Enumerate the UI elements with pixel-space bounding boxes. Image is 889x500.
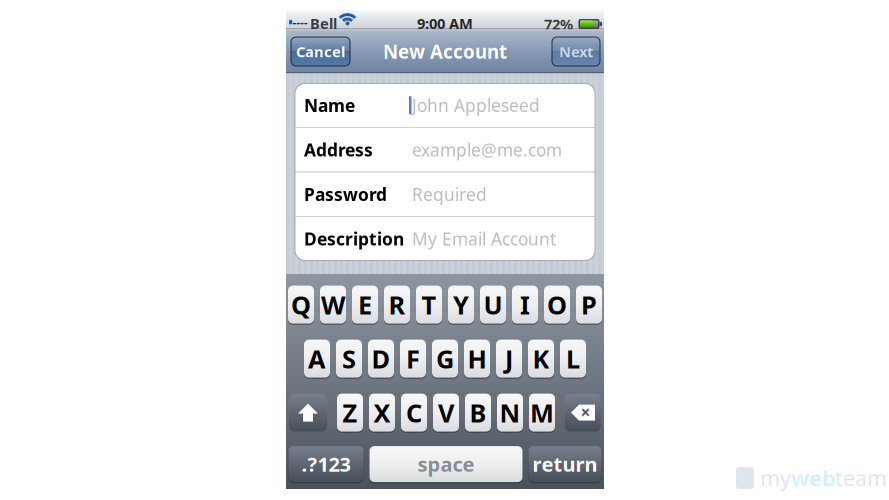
button[interactable]: Z — [337, 394, 363, 432]
staticText: Next — [559, 42, 593, 61]
staticText: my — [760, 464, 791, 492]
staticText: Password — [304, 183, 387, 206]
button[interactable]: J — [496, 340, 522, 378]
button[interactable]: L — [560, 340, 586, 378]
button[interactable]: I — [512, 286, 538, 324]
staticText: H — [467, 342, 486, 375]
staticText: B — [469, 396, 486, 429]
staticText: K — [532, 342, 549, 375]
button[interactable]: space — [369, 446, 522, 482]
staticText: team — [835, 464, 887, 492]
button[interactable]: H — [464, 340, 490, 378]
staticText: × — [580, 401, 590, 424]
button[interactable]: E — [352, 286, 378, 324]
button[interactable]: return — [528, 446, 601, 482]
staticText: Required — [412, 183, 487, 206]
staticText: Q — [291, 288, 311, 321]
staticText: Z — [342, 396, 357, 429]
button[interactable]: G — [432, 340, 458, 378]
staticText: Description — [304, 227, 404, 250]
staticText: Cancel — [296, 42, 345, 61]
staticText: W — [321, 288, 345, 321]
button[interactable]: Name — [295, 83, 595, 127]
button[interactable]: .?123 — [288, 446, 363, 482]
staticText: <> — [736, 467, 754, 489]
button[interactable]: C — [401, 394, 427, 432]
button[interactable]: S — [336, 340, 362, 378]
staticText: example@me.com — [412, 138, 562, 161]
staticText: U — [483, 288, 502, 321]
button[interactable]: X — [369, 394, 395, 432]
button[interactable]: Delete — [565, 394, 601, 432]
staticText: R — [388, 288, 405, 321]
staticText: .?123 — [301, 451, 350, 477]
staticText: T — [421, 288, 436, 321]
staticText: D — [371, 342, 390, 375]
staticText: Bell — [310, 13, 337, 33]
staticText: L — [566, 342, 580, 375]
staticText: space — [417, 451, 474, 477]
button[interactable]: K — [528, 340, 554, 378]
staticText: S — [342, 342, 356, 375]
staticText: My Email Account — [412, 227, 556, 250]
staticText: N — [499, 396, 520, 429]
staticText: New Account — [383, 39, 507, 64]
button[interactable]: D — [368, 340, 394, 378]
button[interactable]: Q — [288, 286, 314, 324]
staticText: A — [308, 342, 326, 375]
staticText: I — [520, 288, 530, 321]
staticText: F — [406, 342, 420, 375]
staticText: X — [373, 396, 390, 429]
staticText: return — [532, 451, 597, 477]
button[interactable]: R — [384, 286, 410, 324]
button[interactable]: M — [529, 394, 555, 432]
button[interactable]: Cancel — [291, 37, 350, 66]
button[interactable]: Next — [552, 37, 600, 66]
button[interactable]: Description — [295, 217, 595, 260]
button[interactable]: O — [544, 286, 570, 324]
button[interactable]: Address — [295, 128, 595, 171]
staticText: M — [530, 396, 554, 429]
button[interactable]: Shift — [289, 394, 327, 432]
button[interactable]: W — [320, 286, 346, 324]
staticText: 72% — [544, 14, 573, 34]
button[interactable]: Password — [295, 172, 595, 216]
staticText: Name — [304, 94, 355, 117]
button[interactable]: B — [465, 394, 491, 432]
staticText: John Appleseed — [412, 94, 540, 117]
staticText: V — [438, 396, 454, 429]
button[interactable]: T — [416, 286, 442, 324]
button[interactable]: V — [433, 394, 459, 432]
staticText: Address — [304, 138, 373, 161]
staticText: C — [406, 396, 422, 429]
staticText: web — [791, 464, 835, 492]
staticText: J — [505, 342, 513, 375]
staticText: 9:00 AM — [417, 13, 473, 33]
button[interactable]: F — [400, 340, 426, 378]
staticText: P — [581, 288, 597, 321]
staticText: G — [436, 342, 454, 375]
button[interactable]: P — [576, 286, 602, 324]
staticText: E — [358, 288, 372, 321]
button[interactable]: N — [497, 394, 523, 432]
staticText: O — [547, 288, 567, 321]
button[interactable]: U — [480, 286, 506, 324]
button[interactable]: A — [304, 340, 330, 378]
button[interactable]: Y — [448, 286, 474, 324]
staticText: Y — [453, 288, 469, 321]
